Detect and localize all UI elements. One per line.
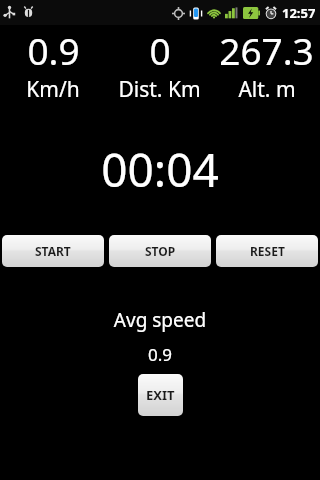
staticText: Avg speed — [0, 307, 320, 333]
button[interactable]: RESET — [216, 235, 318, 267]
staticText: 0.9 — [27, 25, 80, 75]
staticText: EXIT — [146, 386, 175, 404]
staticText: STOP — [145, 243, 176, 259]
staticText: Alt. m — [238, 75, 296, 104]
button[interactable]: START — [2, 235, 104, 267]
staticText: 0.9 — [0, 343, 320, 366]
button[interactable]: EXIT — [138, 374, 183, 416]
staticText: RESET — [250, 243, 285, 259]
staticText: 0 — [149, 25, 171, 75]
staticText: START — [35, 243, 71, 259]
staticText: 00:04 — [0, 138, 320, 201]
staticText: Km/h — [26, 75, 80, 104]
button[interactable]: STOP — [109, 235, 211, 267]
staticText: 267.3 — [219, 25, 314, 75]
staticText: 12:57 — [282, 4, 316, 22]
staticText: Dist. Km — [118, 75, 201, 104]
